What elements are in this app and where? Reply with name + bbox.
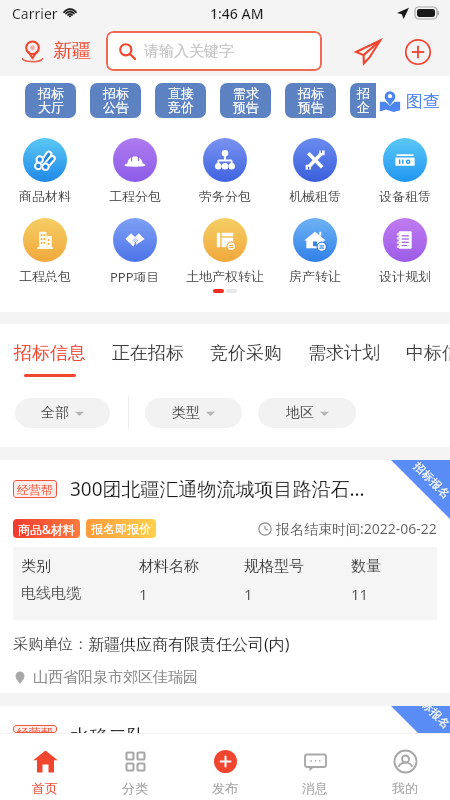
button[interactable]: 经营帮 xyxy=(0,460,450,693)
button[interactable]: 招标 公告 xyxy=(90,83,141,118)
staticText: 劳务分包 xyxy=(199,188,251,202)
staticText: 招标 大厅 xyxy=(38,85,64,116)
staticText: 招 企 xyxy=(357,85,370,116)
staticText: 1 xyxy=(139,584,244,604)
button[interactable]: 新疆 xyxy=(22,39,91,63)
button[interactable]: 分类 xyxy=(90,734,180,800)
button[interactable]: 工程总包 xyxy=(0,202,90,282)
staticText: 山西省阳泉市郊区佳瑞园 xyxy=(33,668,198,687)
staticText: 工程总包 xyxy=(19,268,71,282)
staticText: 商品&材料 xyxy=(18,521,75,537)
button[interactable]: 土地产权转让 xyxy=(180,202,270,282)
staticText: 需求 预告 xyxy=(233,85,259,116)
staticText: 首页 xyxy=(32,780,58,796)
button[interactable]: 类型 xyxy=(145,398,242,428)
button[interactable]: Send xyxy=(354,38,382,66)
staticText: 1:46 AM xyxy=(210,4,264,23)
staticText: 地区 xyxy=(286,404,314,422)
button[interactable]: PPP项目 xyxy=(90,202,180,282)
button[interactable]: 设备租赁 xyxy=(360,122,450,202)
button[interactable]: 经营帮 xyxy=(0,706,450,733)
staticText: 电线电缆 xyxy=(21,584,139,603)
staticText: 招标 预告 xyxy=(298,85,324,116)
staticText: 水稳二队 xyxy=(70,725,146,733)
staticText: Carrier xyxy=(12,4,58,23)
button[interactable]: 招标 大厅 xyxy=(25,83,76,118)
staticText: 报名结束时间:2022-06-22 xyxy=(276,519,437,538)
staticText: 机械租赁 xyxy=(289,188,341,202)
staticText: 招标报名 xyxy=(411,706,450,731)
staticText: 房产转让 xyxy=(289,268,341,282)
staticText: 正在招标 xyxy=(112,342,184,365)
staticText: 经营帮 xyxy=(17,482,53,497)
button[interactable]: 招 企 xyxy=(350,83,376,118)
staticText: 商品材料 xyxy=(19,188,71,202)
staticText: 工程分包 xyxy=(109,188,161,202)
staticText: 11 xyxy=(351,584,369,604)
button[interactable]: 劳务分包 xyxy=(180,122,270,202)
staticText: 需求计划 xyxy=(308,342,380,365)
staticText: 直接 竞价 xyxy=(168,85,194,116)
staticText: 新疆 xyxy=(53,39,91,63)
staticText: 设备租赁 xyxy=(379,188,431,202)
button[interactable]: 正在招标 xyxy=(112,324,184,382)
staticText: PPP项目 xyxy=(110,268,160,282)
button[interactable]: 图查 xyxy=(379,90,440,112)
staticText: 类别 xyxy=(21,557,139,576)
staticText: 新疆供应商有限责任公司(内) xyxy=(88,633,290,655)
staticText: 300团北疆汇通物流城项目路沿石… xyxy=(70,476,365,502)
staticText: 经营帮 xyxy=(17,725,53,733)
staticText: 请输入关键字 xyxy=(144,42,234,61)
button[interactable]: 地区 xyxy=(258,398,356,428)
button[interactable]: 机械租赁 xyxy=(270,122,360,202)
staticText: 报名即报价 xyxy=(91,521,151,536)
button[interactable]: 消息 xyxy=(270,734,360,800)
button[interactable]: 工程分包 xyxy=(90,122,180,202)
button[interactable]: 设计规划 xyxy=(360,202,450,282)
staticText: 类型 xyxy=(172,404,200,422)
button[interactable]: 直接 竞价 xyxy=(155,83,206,118)
button[interactable]: 竞价采购 xyxy=(210,324,282,382)
staticText: 发布 xyxy=(212,780,238,796)
staticText: 招标报名 xyxy=(411,460,450,501)
staticText: 1 xyxy=(244,584,351,604)
button[interactable]: 招标信息 xyxy=(14,324,86,382)
staticText: 分类 xyxy=(122,780,148,796)
staticText: 数量 xyxy=(351,557,381,576)
button[interactable]: 房产转让 xyxy=(270,202,360,282)
staticText: 招标 公告 xyxy=(103,85,129,116)
staticText: 招标信息 xyxy=(14,342,86,365)
button[interactable]: Add xyxy=(404,38,432,66)
button[interactable]: 需求 预告 xyxy=(220,83,271,118)
staticText: 图查 xyxy=(406,91,440,112)
button[interactable]: 中标信息 xyxy=(406,324,450,382)
button[interactable]: 请输入关键字 xyxy=(106,31,322,71)
staticText: 我的 xyxy=(392,780,418,796)
button[interactable]: 商品材料 xyxy=(0,122,90,202)
staticText: 竞价采购 xyxy=(210,342,282,365)
staticText: 采购单位： xyxy=(13,635,88,654)
button[interactable]: 全部 xyxy=(15,398,110,428)
staticText: 消息 xyxy=(302,780,328,796)
button[interactable]: 首页 xyxy=(0,734,90,800)
staticText: 规格型号 xyxy=(244,557,351,576)
button[interactable]: 招标 预告 xyxy=(285,83,336,118)
staticText: 土地产权转让 xyxy=(186,268,264,282)
staticText: 中标信息 xyxy=(406,342,450,365)
staticText: 设计规划 xyxy=(379,268,431,282)
staticText: 材料名称 xyxy=(139,557,244,576)
button[interactable]: 发布 xyxy=(180,734,270,800)
button[interactable]: 我的 xyxy=(360,734,450,800)
staticText: 全部 xyxy=(41,404,69,422)
button[interactable]: 需求计划 xyxy=(308,324,380,382)
